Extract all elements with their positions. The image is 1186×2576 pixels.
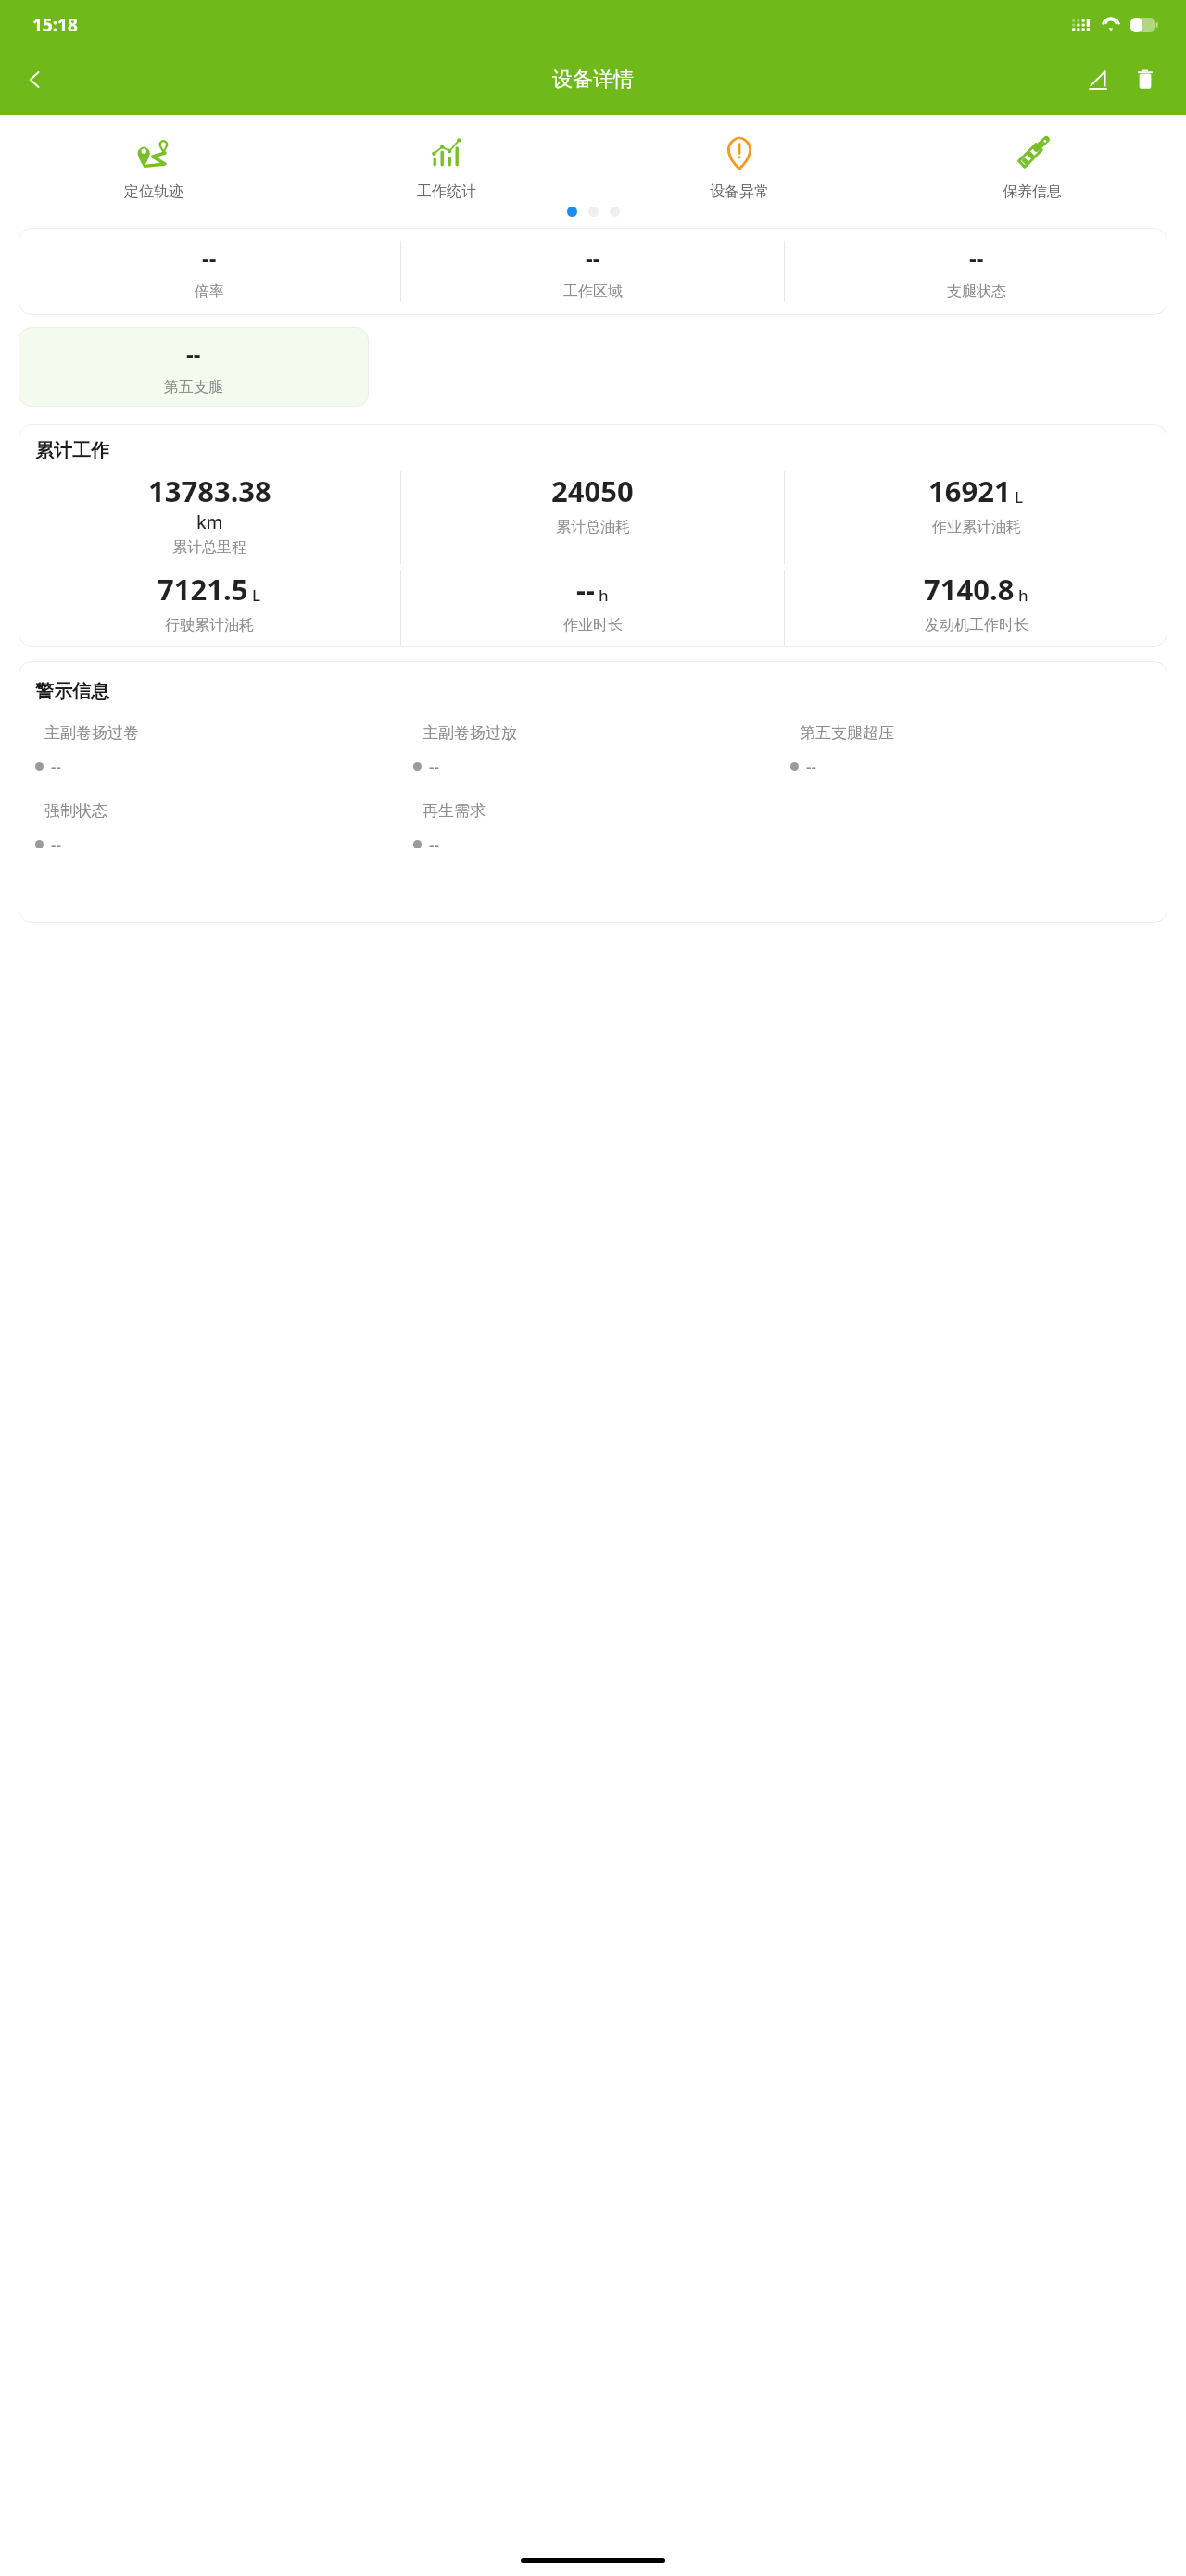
staticText: 倍率 [195,283,224,301]
staticText: 定位轨迹 [124,182,183,201]
staticText: 第五支腿超压 [800,723,894,743]
staticText: 警示信息 [35,680,109,703]
staticText: L [252,584,261,606]
staticText: 7121.5 [158,570,248,609]
staticText: -- [576,570,595,609]
staticText: 发动机工作时长 [925,616,1028,635]
staticText: -- [586,243,600,273]
button[interactable]: Edit [1077,59,1117,100]
staticText: -- [51,756,61,777]
staticText: -- [429,756,439,777]
staticText: 工作统计 [417,182,476,201]
staticText: -- [969,243,984,273]
staticText: 16921 [928,471,1011,510]
staticText: 设备详情 [552,67,634,93]
button[interactable]: 定位轨迹 [7,127,300,207]
staticText: 再生需求 [423,801,486,821]
staticText: -- [202,243,217,273]
staticText: 行驶累计油耗 [165,616,254,635]
staticText: 第五支腿 [164,378,223,396]
staticText: 13783.38 [148,471,271,510]
staticText: 强制状态 [44,801,107,821]
staticText: -- [51,834,61,855]
staticText: 支腿状态 [947,283,1006,301]
staticText: 设备异常 [710,182,769,201]
staticText: 24050 [551,471,634,510]
staticText: L [1015,486,1024,508]
staticText: 主副卷扬过卷 [44,723,139,743]
staticText: 保养信息 [1003,182,1062,201]
staticText: 累计总里程 [172,538,246,557]
staticText: 工作区域 [563,283,623,301]
button[interactable]: 设备异常 [593,127,886,207]
staticText: 累计工作 [35,439,109,462]
staticText: 累计总油耗 [556,518,630,536]
button[interactable]: 保养信息 [886,127,1179,207]
button[interactable]: 工作统计 [300,127,593,207]
staticText: 15:18 [32,13,78,37]
staticText: km [196,510,223,534]
staticText: h [1018,584,1028,606]
staticText: 7140.8 [924,570,1015,609]
button[interactable]: Delete [1125,59,1166,100]
staticText: 作业累计油耗 [932,518,1021,536]
staticText: -- [429,834,439,855]
staticText: 主副卷扬过放 [423,723,517,743]
button[interactable]: Back [13,57,57,102]
staticText: -- [806,756,816,777]
staticText: 作业时长 [563,616,623,635]
staticText: -- [186,338,201,369]
staticText: h [599,584,609,606]
